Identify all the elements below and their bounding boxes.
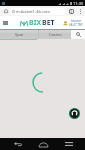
button[interactable]: Back <box>11 138 24 150</box>
staticText: BET <box>42 18 55 28</box>
button[interactable]: Search <box>71 30 85 39</box>
staticText: m.bixbet1-4b.com <box>16 9 51 14</box>
staticText: 68.47 TRY <box>69 23 83 27</box>
button[interactable]: Home <box>2 7 10 15</box>
staticText: bixuser <box>71 19 82 23</box>
button[interactable]: Menu <box>1 19 9 27</box>
staticText: BIX <box>29 18 42 28</box>
button[interactable]: BIX <box>20 18 55 28</box>
button[interactable]: Recent apps <box>62 138 75 150</box>
button[interactable]: bixuser <box>63 19 83 27</box>
button[interactable]: More options <box>77 8 84 15</box>
button[interactable]: Home <box>37 138 50 150</box>
staticText: Casino <box>49 32 62 37</box>
staticText: Spor <box>15 32 24 37</box>
staticText: 3 <box>70 9 73 14</box>
button[interactable]: Tabs <box>69 9 74 14</box>
button[interactable]: Spor <box>0 30 38 39</box>
staticText: 11:35 <box>73 1 84 6</box>
button[interactable]: Live support <box>69 108 80 119</box>
button[interactable]: m.bixbet1-4b.com <box>10 8 65 15</box>
button[interactable]: Casino <box>39 30 71 39</box>
